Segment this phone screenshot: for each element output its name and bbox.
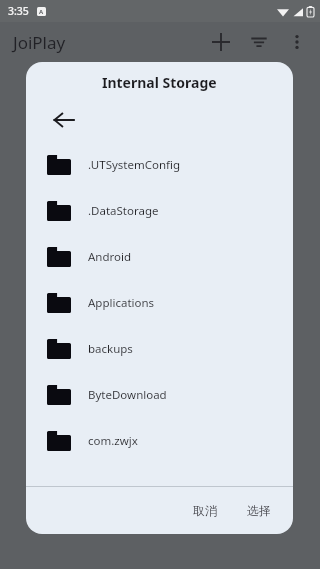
button[interactable]: Back [46,102,82,138]
staticText: .DataStorage [88,203,159,219]
button[interactable]: 取消 [181,495,229,526]
staticText: 3:35 [8,4,29,18]
button[interactable]: .UTSystemConfig [26,142,293,188]
button[interactable]: backups [26,326,293,372]
staticText: backups [88,341,133,357]
staticText: Internal Storage [102,73,217,92]
button[interactable]: 选择 [235,495,283,526]
button[interactable]: Android [26,234,293,280]
staticText: A [39,8,44,16]
staticText: Android [88,249,132,265]
staticText: .UTSystemConfig [88,157,181,173]
staticText: com.zwjx [88,433,138,449]
button[interactable]: More options [278,23,316,61]
button[interactable]: .DataStorage [26,188,293,234]
button[interactable]: Filter [240,23,278,61]
button[interactable]: Applications [26,280,293,326]
staticText: ByteDownload [88,387,167,403]
staticText: Applications [88,295,155,311]
staticText: JoiPlay [13,31,66,54]
button[interactable]: Add [202,23,240,61]
staticText: 选择 [247,503,271,518]
button[interactable]: ByteDownload [26,372,293,418]
button[interactable]: com.zwjx [26,418,293,464]
staticText: 取消 [193,503,217,518]
